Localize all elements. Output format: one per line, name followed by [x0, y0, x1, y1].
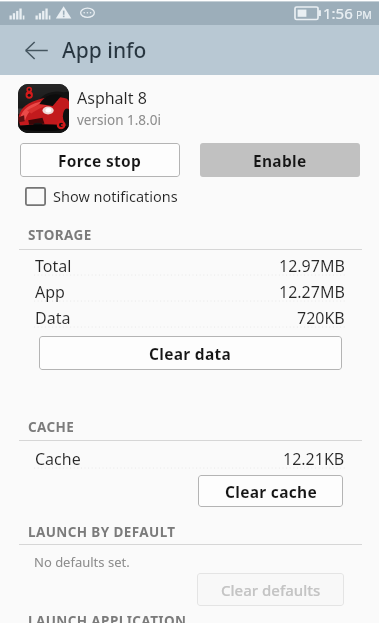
button[interactable]: Cache — [0, 446, 379, 472]
button[interactable]: Clear defaults — [197, 573, 344, 606]
button[interactable]: App — [0, 279, 379, 305]
staticText: 1:56 — [323, 3, 353, 23]
button[interactable]: Force stop — [20, 143, 180, 177]
staticText: LAUNCH APPLICATION — [28, 612, 187, 623]
button[interactable]: Back — [12, 25, 60, 75]
staticText: Show notifications — [53, 186, 178, 206]
button[interactable]: Show notifications — [25, 184, 178, 208]
staticText: PM — [356, 8, 372, 22]
staticText: Cache — [35, 448, 81, 470]
staticText: Asphalt 8 — [77, 87, 147, 109]
button[interactable]: Clear data — [39, 336, 342, 370]
staticText: Total — [35, 255, 72, 277]
staticText: Enable — [253, 150, 307, 171]
staticText: App — [35, 281, 65, 303]
button[interactable]: Total — [0, 253, 379, 279]
button[interactable]: Clear cache — [198, 475, 343, 507]
staticText: 12.27MB — [279, 281, 345, 303]
staticText: Clear cache — [225, 481, 317, 502]
staticText: version 1.8.0i — [77, 111, 161, 129]
button[interactable]: Asphalt 8 — [0, 80, 379, 136]
staticText: STORAGE — [28, 226, 92, 244]
staticText: No defaults set. — [34, 553, 130, 571]
staticText: 12.21KB — [283, 448, 345, 470]
staticText: Clear data — [149, 343, 232, 364]
button[interactable]: Data — [0, 305, 379, 331]
staticText: Data — [35, 307, 71, 329]
staticText: App info — [62, 36, 147, 65]
staticText: CACHE — [28, 418, 75, 436]
staticText: Force stop — [58, 150, 142, 171]
button[interactable]: Enable — [200, 143, 360, 177]
staticText: 720KB — [297, 307, 345, 329]
staticText: Clear defaults — [221, 580, 321, 600]
staticText: 12.97MB — [279, 255, 345, 277]
staticText: LAUNCH BY DEFAULT — [28, 523, 176, 541]
